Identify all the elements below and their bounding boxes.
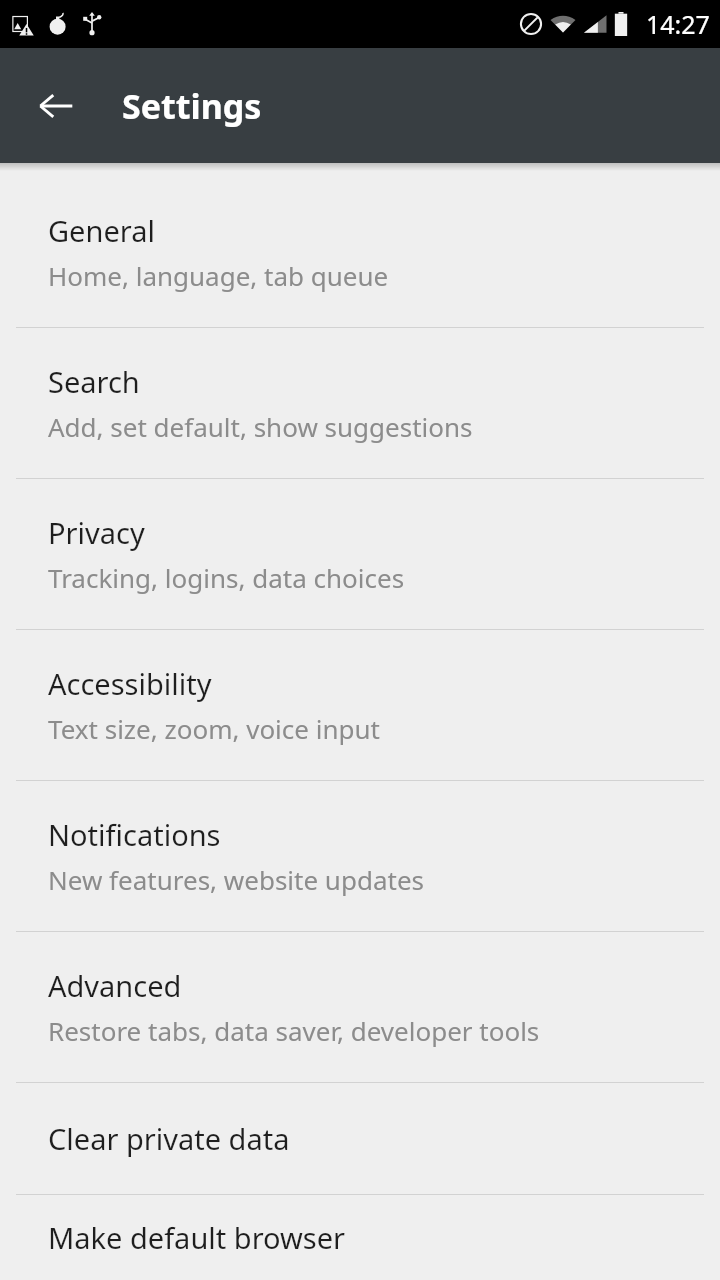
- staticText: Clear private data: [48, 1119, 290, 1158]
- staticText: Advanced: [48, 966, 182, 1005]
- staticText: Make default browser: [48, 1218, 346, 1257]
- staticText: Search: [48, 362, 140, 401]
- button[interactable]: Back: [22, 72, 90, 140]
- button[interactable]: Advanced: [0, 932, 720, 1082]
- staticText: Notifications: [48, 815, 221, 854]
- button[interactable]: Notifications: [0, 781, 720, 931]
- staticText: Add, set default, show suggestions: [48, 409, 473, 444]
- staticText: 14:27: [646, 7, 710, 41]
- button[interactable]: General: [0, 177, 720, 327]
- staticText: General: [48, 211, 155, 250]
- button[interactable]: Search: [0, 328, 720, 478]
- staticText: Restore tabs, data saver, developer tool…: [48, 1013, 540, 1048]
- button[interactable]: Make default browser: [0, 1195, 720, 1280]
- staticText: Settings: [122, 83, 262, 129]
- staticText: New features, website updates: [48, 862, 425, 897]
- staticText: Text size, zoom, voice input: [48, 711, 380, 746]
- staticText: Tracking, logins, data choices: [48, 560, 405, 595]
- button[interactable]: Accessibility: [0, 630, 720, 780]
- button[interactable]: Privacy: [0, 479, 720, 629]
- staticText: Accessibility: [48, 664, 212, 703]
- button[interactable]: Clear private data: [0, 1083, 720, 1194]
- staticText: Privacy: [48, 513, 145, 552]
- staticText: Home, language, tab queue: [48, 258, 389, 293]
